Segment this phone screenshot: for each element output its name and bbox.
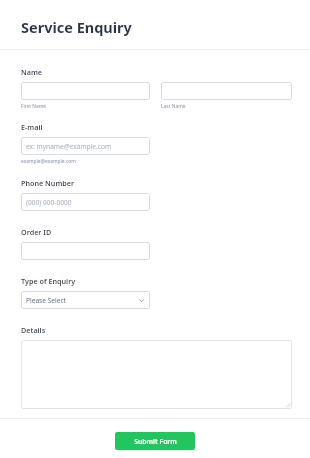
staticText: Name <box>21 67 43 77</box>
button[interactable] <box>161 82 292 100</box>
button[interactable]: Please Select <box>21 291 150 309</box>
button[interactable] <box>21 82 150 100</box>
button[interactable] <box>21 340 292 409</box>
staticText: Type of Enquiry <box>21 276 76 286</box>
staticText: Please Select <box>26 296 67 305</box>
button[interactable]: ex: myname@example.com <box>21 137 150 155</box>
staticText: Order ID <box>21 227 52 237</box>
staticText: ex: myname@example.com <box>26 142 112 151</box>
staticText: Last Name <box>161 103 186 110</box>
staticText: (000) 000-0000 <box>26 198 72 207</box>
staticText: First Name <box>21 103 46 110</box>
button[interactable]: (000) 000-0000 <box>21 193 150 211</box>
staticText: Service Enquiry <box>21 17 132 37</box>
staticText: Phone Number <box>21 178 75 188</box>
staticText: E-mail <box>21 122 43 132</box>
staticText: Submit Form <box>134 437 177 446</box>
staticText: example@example.com <box>21 158 76 165</box>
button[interactable] <box>21 242 150 260</box>
button[interactable]: Submit Form <box>115 432 195 450</box>
staticText: Details <box>21 325 46 335</box>
